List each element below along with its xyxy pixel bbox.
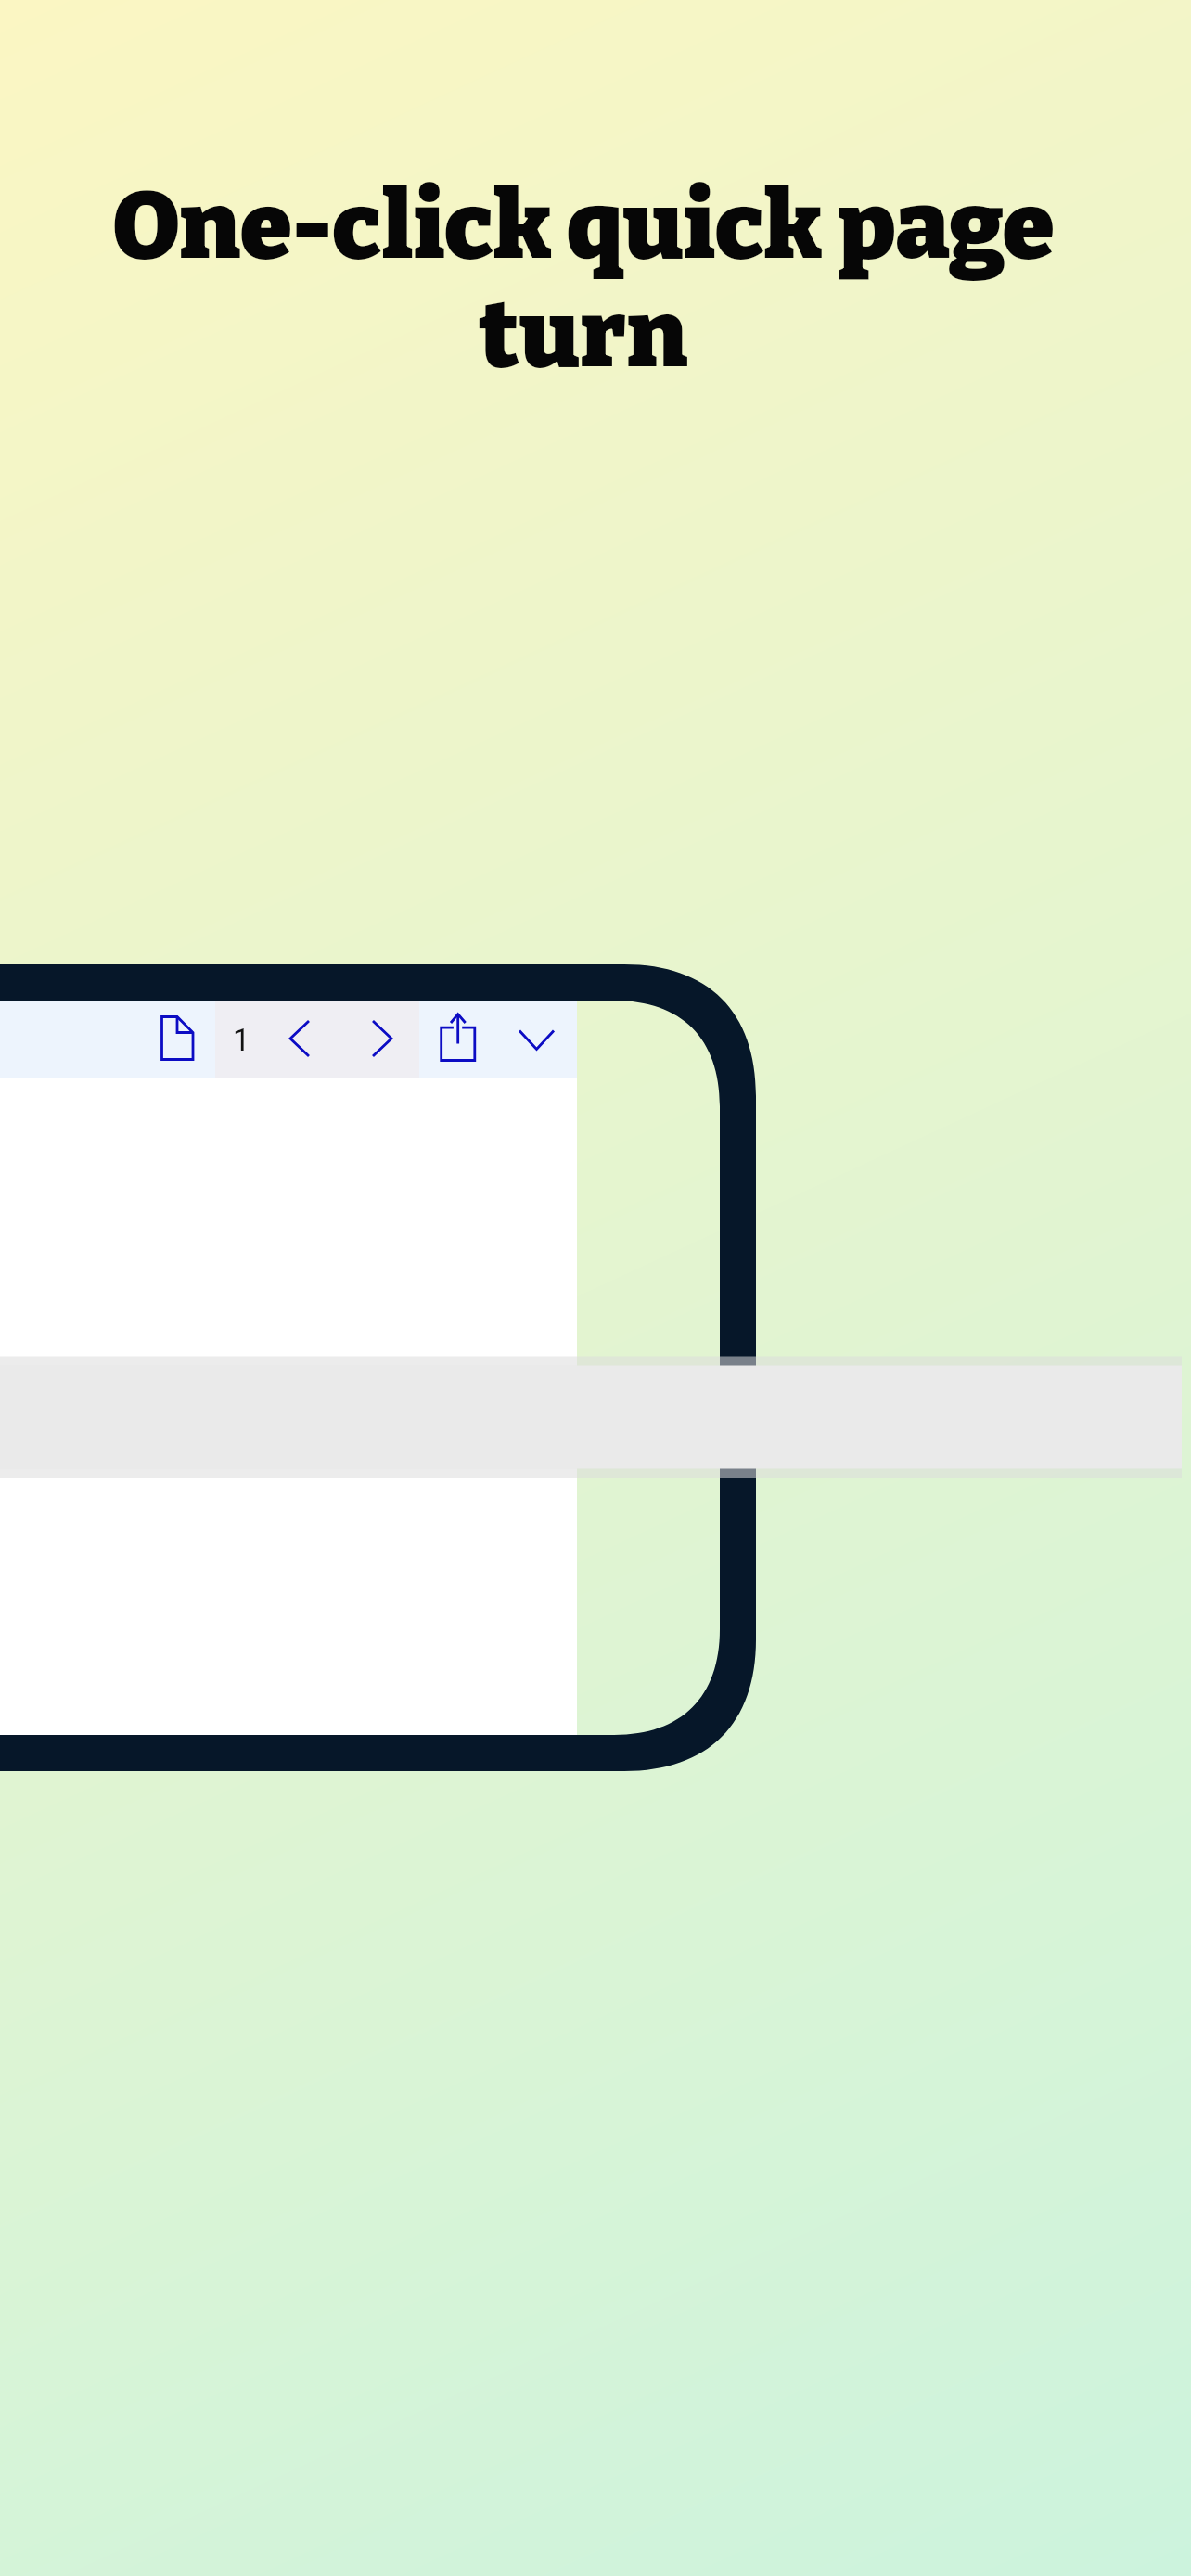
button[interactable]: Share	[425, 1001, 492, 1078]
staticText: 1	[233, 1022, 250, 1058]
button[interactable]: Next page	[348, 1001, 418, 1078]
button[interactable]: Previous page	[264, 1001, 335, 1078]
button[interactable]: Document	[145, 1001, 215, 1078]
staticText: One-click quick page turn	[92, 171, 1075, 391]
button[interactable]: More options	[503, 1001, 573, 1078]
button[interactable]: 1	[225, 1019, 257, 1060]
